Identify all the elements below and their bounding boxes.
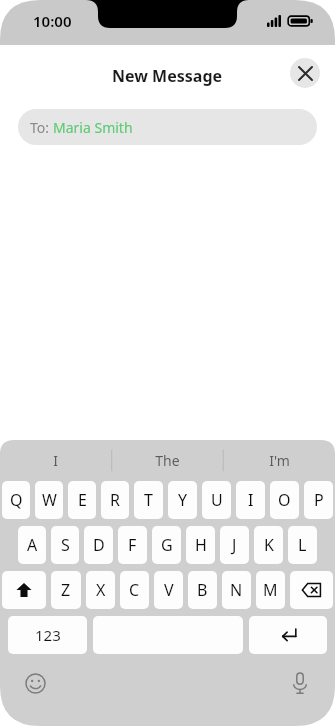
- button[interactable]: A: [18, 526, 46, 564]
- button[interactable]: N: [222, 571, 251, 609]
- button[interactable]: Y: [168, 481, 197, 519]
- staticText: J: [232, 534, 237, 556]
- staticText: Q: [10, 489, 23, 511]
- staticText: M: [263, 579, 278, 601]
- staticText: X: [96, 579, 106, 601]
- staticText: Z: [61, 579, 71, 601]
- staticText: P: [314, 489, 324, 511]
- staticText: L: [298, 534, 307, 556]
- button[interactable]: Q: [2, 481, 30, 519]
- button[interactable]: W: [35, 481, 63, 519]
- staticText: W: [42, 489, 57, 511]
- button[interactable]: O: [270, 481, 299, 519]
- button[interactable]: I: [0, 440, 111, 481]
- staticText: E: [78, 489, 87, 511]
- staticText: To:: [30, 118, 53, 137]
- button[interactable]: H: [186, 526, 215, 564]
- button[interactable]: R: [101, 481, 129, 519]
- button[interactable]: V: [154, 571, 183, 609]
- button[interactable]: K: [254, 526, 283, 564]
- staticText: B: [197, 579, 208, 601]
- button[interactable]: U: [202, 481, 231, 519]
- button[interactable]: I'm: [223, 440, 335, 481]
- button[interactable]: Shift: [2, 571, 46, 609]
- button[interactable]: F: [118, 526, 147, 564]
- button[interactable]: Backspace: [290, 571, 333, 609]
- staticText: I'm: [269, 451, 290, 470]
- button[interactable]: T: [134, 481, 163, 519]
- staticText: F: [128, 534, 137, 556]
- button[interactable]: M: [256, 571, 285, 609]
- staticText: I: [53, 451, 58, 470]
- staticText: R: [110, 489, 120, 511]
- button[interactable]: Dictation: [285, 668, 315, 698]
- staticText: 123: [35, 625, 61, 645]
- staticText: A: [27, 534, 38, 556]
- button[interactable]: 123: [8, 616, 87, 654]
- staticText: S: [61, 534, 70, 556]
- button[interactable]: X: [86, 571, 115, 609]
- staticText: 10:00: [33, 11, 72, 31]
- staticText: I: [248, 489, 254, 511]
- button[interactable]: G: [152, 526, 181, 564]
- staticText: New Message: [112, 65, 223, 87]
- button[interactable]: Z: [51, 571, 81, 609]
- staticText: V: [164, 579, 174, 601]
- button[interactable]: I: [236, 481, 265, 519]
- button[interactable]: S: [51, 526, 79, 564]
- button[interactable]: Text Message • SMS: [56, 443, 321, 475]
- staticText: The: [155, 451, 180, 470]
- button[interactable]: Return: [249, 616, 327, 654]
- button[interactable]: D: [84, 526, 113, 564]
- staticText: U: [211, 489, 223, 511]
- staticText: Text Message • SMS: [69, 450, 299, 468]
- button[interactable]: C: [120, 571, 149, 609]
- button[interactable]: Emoji: [20, 668, 50, 698]
- button[interactable]: E: [68, 481, 96, 519]
- staticText: G: [161, 534, 173, 556]
- staticText: O: [278, 489, 291, 511]
- staticText: H: [195, 534, 207, 556]
- staticText: K: [264, 534, 274, 556]
- button[interactable]: P: [304, 481, 333, 519]
- button[interactable]: L: [288, 526, 317, 564]
- button[interactable]: The: [111, 440, 223, 481]
- staticText: Y: [178, 489, 188, 511]
- staticText: N: [230, 579, 243, 601]
- button[interactable]: J: [220, 526, 249, 564]
- staticText: D: [93, 534, 105, 556]
- button[interactable]: To:: [18, 109, 317, 145]
- staticText: T: [144, 489, 153, 511]
- button[interactable]: B: [188, 571, 217, 609]
- staticText: Maria Smith: [53, 118, 133, 137]
- staticText: C: [129, 579, 140, 601]
- button[interactable]: Close: [290, 58, 320, 88]
